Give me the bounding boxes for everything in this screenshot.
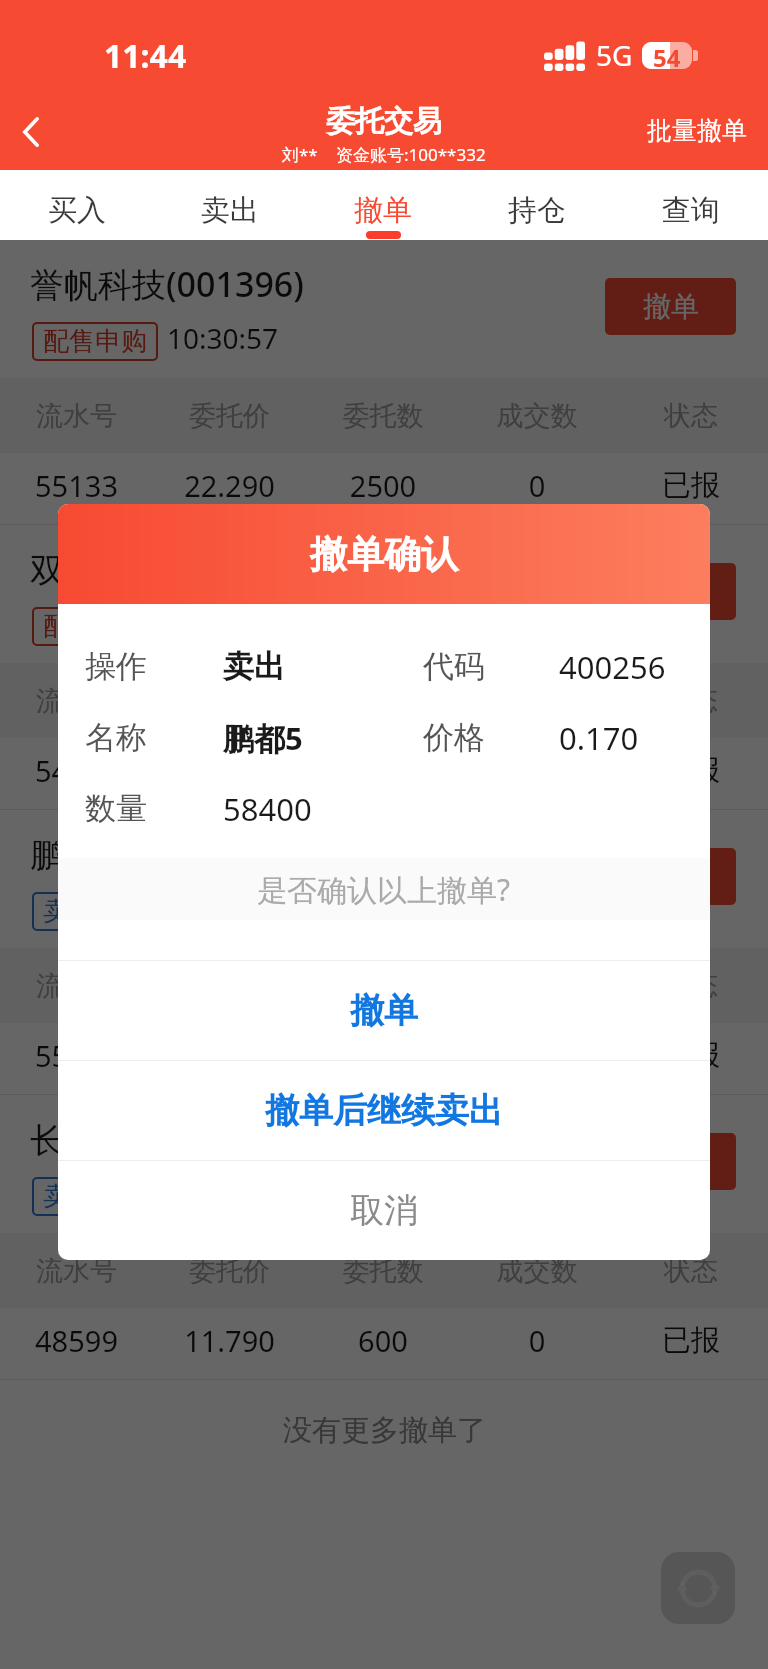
button[interactable]: 返回: [0, 95, 72, 170]
staticText: 委托数: [306, 399, 460, 433]
staticText: 持仓: [508, 192, 566, 229]
staticText: 成交数: [460, 1254, 614, 1288]
staticText: 撤单: [350, 989, 418, 1032]
button[interactable]: 刷新: [661, 1552, 735, 1624]
staticText: 10:30:57: [167, 319, 279, 357]
staticText: 55133: [0, 466, 153, 505]
staticText: 已报: [614, 1322, 768, 1359]
staticText: 买入: [48, 192, 106, 229]
staticText: 已报: [614, 1037, 768, 1074]
staticText: 刘**: [282, 143, 318, 166]
staticText: 流水号: [0, 684, 153, 718]
button[interactable]: 查询: [614, 170, 768, 240]
staticText: 撤单: [643, 289, 699, 324]
staticText: 双林股份(300100): [30, 546, 304, 592]
staticText: 5G: [596, 36, 633, 74]
staticText: 委托交易: [326, 103, 442, 140]
staticText: 批量撤单: [647, 115, 747, 146]
staticText: 卖出: [43, 1180, 95, 1213]
staticText: 22.290: [153, 466, 306, 505]
staticText: 1200: [306, 751, 460, 790]
staticText: 11.790: [153, 1321, 306, 1360]
staticText: 54822: [0, 751, 153, 790]
staticText: 取消: [350, 1189, 418, 1232]
staticText: 价格: [423, 718, 485, 757]
staticText: 鹏都5: [223, 717, 303, 759]
staticText: 名称: [85, 718, 147, 757]
staticText: 58400: [223, 788, 312, 830]
staticText: 撤单: [354, 192, 412, 229]
staticText: 资金账号:100**332: [336, 143, 486, 166]
staticText: 委托数: [306, 1254, 460, 1288]
staticText: 400256: [559, 646, 666, 688]
staticText: 操作: [85, 647, 147, 686]
staticText: 配售申购: [43, 325, 147, 358]
staticText: 0.170: [559, 717, 639, 759]
staticText: 成交数: [460, 399, 614, 433]
staticText: 已报: [614, 752, 768, 789]
button[interactable]: 撤单后继续卖出: [58, 1061, 710, 1160]
staticText: 0: [460, 1321, 614, 1360]
staticText: 是否确认以上撤单?: [257, 869, 511, 910]
staticText: 代码: [423, 647, 485, 686]
staticText: 状态: [614, 399, 768, 433]
staticText: 卖出: [201, 192, 259, 229]
staticText: 55011: [0, 1036, 153, 1075]
staticText: 54: [653, 41, 681, 68]
button[interactable]: 撤单: [58, 961, 710, 1060]
staticText: 查询: [662, 192, 720, 229]
staticText: 配售申购: [43, 610, 147, 643]
staticText: 卖出: [223, 647, 285, 686]
staticText: 11:44: [104, 34, 187, 78]
staticText: 委托价: [153, 399, 306, 433]
staticText: 48599: [0, 1321, 153, 1360]
button[interactable]: 撤单: [605, 278, 736, 335]
button[interactable]: 持仓: [460, 170, 614, 240]
staticText: 600: [306, 1321, 460, 1360]
button[interactable]: 买入: [0, 170, 153, 240]
button[interactable]: 撤单: [605, 848, 736, 905]
staticText: 流水号: [0, 1254, 153, 1288]
button[interactable]: 取消: [58, 1161, 710, 1260]
staticText: 状态: [614, 684, 768, 718]
staticText: 流水号: [0, 399, 153, 433]
staticText: 鹏都农牧(002505): [30, 831, 304, 877]
staticText: 状态: [614, 1254, 768, 1288]
staticText: 誉帆科技(001396): [30, 261, 304, 307]
staticText: 撤单后继续卖出: [265, 1089, 503, 1132]
button[interactable]: 撤单: [306, 170, 460, 240]
button[interactable]: 撤单: [605, 1133, 736, 1190]
staticText: 撤单: [643, 574, 699, 609]
staticText: 没有更多撤单了: [283, 1412, 486, 1449]
staticText: 数量: [85, 789, 147, 828]
staticText: 撤单确认: [310, 531, 458, 578]
staticText: 10:24:02: [167, 889, 279, 927]
staticText: 长安汽车(000625): [30, 1116, 304, 1162]
staticText: 2500: [306, 466, 460, 505]
staticText: 18.560: [153, 751, 306, 790]
staticText: 委托数: [306, 969, 460, 1003]
staticText: 流水号: [0, 969, 153, 1003]
staticText: 已报: [614, 467, 768, 504]
staticText: 状态: [614, 969, 768, 1003]
button[interactable]: 卖出: [153, 170, 306, 240]
staticText: 卖出: [43, 895, 95, 928]
button[interactable]: 批量撤单: [639, 109, 755, 152]
button[interactable]: 撤单: [605, 563, 736, 620]
staticText: 委托价: [153, 1254, 306, 1288]
staticText: 0: [460, 466, 614, 505]
staticText: 0: [460, 751, 614, 790]
